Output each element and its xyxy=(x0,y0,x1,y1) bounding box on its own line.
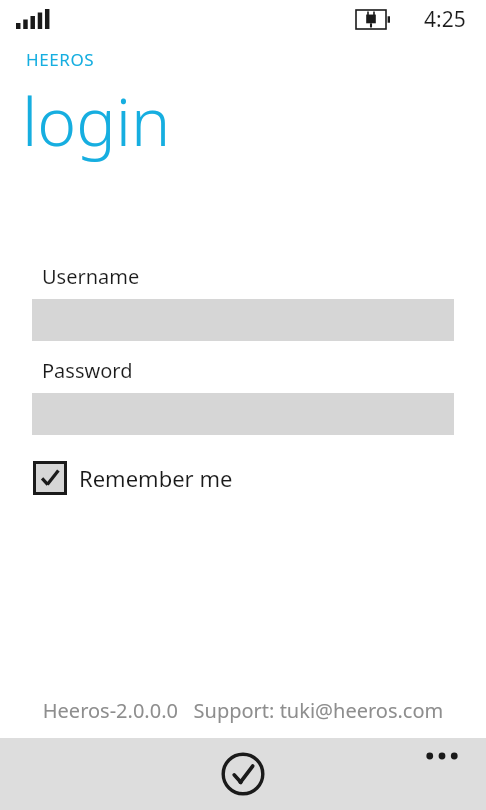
staticText: Password xyxy=(42,357,133,384)
staticText: Heeros-2.0.0.0 Support: tuki@heeros.com xyxy=(0,697,486,724)
button[interactable]: Remember me xyxy=(33,461,233,495)
staticText: Remember me xyxy=(79,463,233,493)
staticText: Username xyxy=(42,263,140,290)
staticText: login xyxy=(22,75,171,165)
button[interactable]: More options xyxy=(414,738,470,774)
button[interactable]: Accept xyxy=(217,748,269,800)
staticText: 4:25 xyxy=(424,5,466,34)
staticText: HEEROS xyxy=(26,48,95,71)
